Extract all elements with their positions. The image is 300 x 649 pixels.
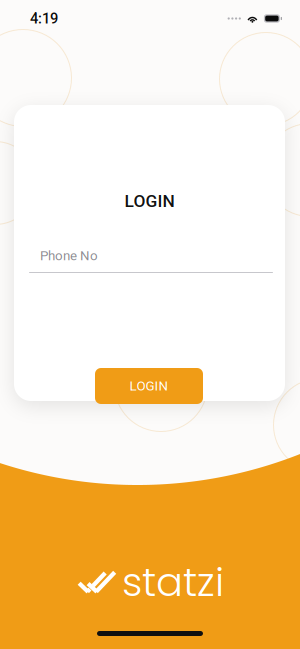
button[interactable]: Phone No field	[29, 248, 273, 279]
staticText: LOGIN	[129, 378, 168, 394]
staticText: statzi	[122, 554, 224, 610]
button[interactable]: LOGIN	[95, 368, 203, 404]
staticText: Phone No	[40, 248, 98, 264]
staticText: 4:19	[30, 10, 58, 27]
staticText: LOGIN	[124, 191, 174, 211]
button[interactable]: Home	[97, 631, 203, 636]
